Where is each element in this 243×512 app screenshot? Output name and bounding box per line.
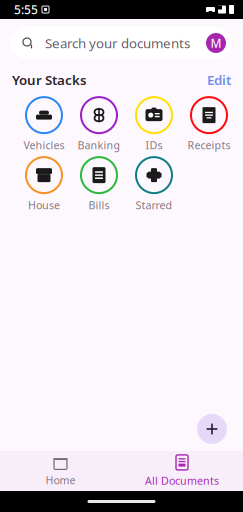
button[interactable]: Receipts bbox=[181, 97, 236, 151]
button[interactable]: Edit bbox=[207, 71, 231, 89]
button[interactable]: Add document bbox=[195, 412, 229, 446]
staticText: Vehicles bbox=[23, 138, 64, 152]
button[interactable]: IDs bbox=[126, 97, 181, 151]
staticText: Receipts bbox=[187, 138, 230, 152]
button[interactable]: Starred bbox=[126, 157, 181, 211]
staticText: Your Stacks bbox=[12, 71, 87, 89]
staticText: Starred bbox=[135, 198, 172, 212]
staticText: M bbox=[210, 35, 221, 51]
button[interactable]: Vehicles bbox=[16, 97, 71, 151]
staticText: All Documents bbox=[145, 473, 219, 488]
staticText: Search your documents bbox=[45, 34, 190, 52]
staticText: IDs bbox=[145, 138, 162, 152]
staticText: Banking bbox=[77, 138, 120, 152]
button[interactable]: Banking bbox=[71, 97, 126, 151]
button[interactable]: House bbox=[16, 157, 71, 211]
staticText: 5:55 bbox=[14, 1, 38, 17]
button[interactable]: Bills bbox=[71, 157, 126, 211]
button[interactable]: All Documents bbox=[121, 452, 243, 490]
button[interactable]: Search your documents bbox=[11, 27, 232, 59]
staticText: Edit bbox=[207, 71, 231, 89]
staticText: Bills bbox=[88, 198, 109, 212]
staticText: House bbox=[28, 198, 60, 212]
staticText: Home bbox=[45, 473, 75, 487]
button[interactable]: Home bbox=[0, 452, 121, 490]
